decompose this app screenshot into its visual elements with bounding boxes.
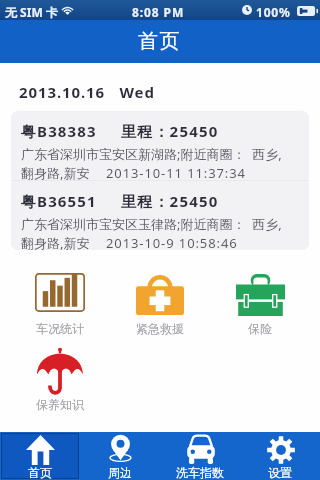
button[interactable]: 粤B36551 <box>11 181 309 250</box>
staticText: 广东省深圳市宝安区新湖路;附近商圈： 西乡, <box>21 145 282 163</box>
button[interactable]: 车况统计 <box>10 268 110 336</box>
staticText: 里程：25450 <box>121 191 219 211</box>
button[interactable]: 设置 <box>240 432 320 480</box>
staticText: 2013.10.16 Wed <box>19 82 155 102</box>
button[interactable]: 首页 <box>0 432 80 480</box>
staticText: 翻身路,新安 <box>21 234 90 250</box>
staticText: 广东省深圳市宝安区玉律路;附近商圈： 西乡, <box>21 215 282 233</box>
staticText: 首页 <box>28 465 52 480</box>
staticText: 2013-10-9 10:58:46 <box>106 234 238 250</box>
button[interactable]: 粤B38383 <box>11 111 309 180</box>
button[interactable]: 保险 <box>210 268 310 336</box>
staticText: 里程：25450 <box>121 121 219 141</box>
button[interactable]: 紧急救援 <box>110 268 210 336</box>
staticText: 洗车指数 <box>176 465 224 480</box>
staticText: 8:08 PM <box>132 4 185 20</box>
staticText: 翻身路,新安 <box>21 164 90 180</box>
staticText: 车况统计 <box>36 321 84 336</box>
staticText: 周边 <box>108 465 132 480</box>
staticText: 100% <box>256 4 291 20</box>
button[interactable]: 保养知识 <box>10 344 110 412</box>
button[interactable]: 周边 <box>80 432 160 480</box>
staticText: 保养知识 <box>36 397 84 412</box>
staticText: 保险 <box>248 321 272 336</box>
staticText: 2013-10-11 11:37:34 <box>106 164 246 180</box>
staticText: 粤B38383 <box>21 121 97 141</box>
staticText: 粤B36551 <box>21 191 97 211</box>
button[interactable]: 洗车指数 <box>160 432 240 480</box>
staticText: 设置 <box>268 465 292 480</box>
staticText: 紧急救援 <box>136 321 184 336</box>
staticText: 无 SIM 卡 <box>5 4 58 20</box>
staticText: 首页 <box>138 29 182 54</box>
